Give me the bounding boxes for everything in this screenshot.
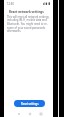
button[interactable]: Recent apps: [37, 110, 44, 117]
staticText: This will reset all network settings,: [7, 15, 50, 19]
staticText: Reset settings: [21, 102, 39, 106]
button[interactable]: Home: [26, 110, 33, 117]
staticText: Bluetooth. You might need to re-enter: [7, 22, 53, 26]
staticText: some of your saved passwords: [7, 26, 46, 30]
staticText: afterwards.: [7, 29, 22, 33]
button[interactable]: Back: [15, 110, 22, 117]
staticText: Reset network settings: [9, 10, 44, 14]
button[interactable]: Reset settings: [14, 100, 45, 107]
staticText: including Wi-Fi, mobile data and: [7, 18, 47, 22]
staticText: 12:30: [7, 2, 14, 6]
